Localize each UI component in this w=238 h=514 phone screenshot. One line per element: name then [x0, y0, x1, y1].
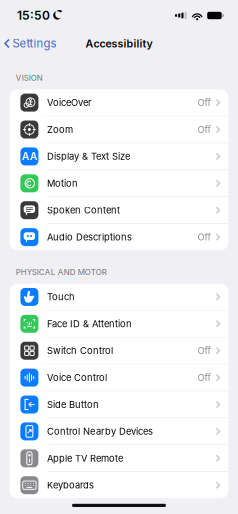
button[interactable]: VoiceOver [9, 89, 228, 116]
button[interactable]: Touch [9, 284, 228, 311]
button[interactable]: Face ID & Attention [9, 311, 228, 338]
staticText: Audio Descriptions [47, 231, 132, 243]
staticText: Spoken Content [47, 205, 120, 216]
button[interactable]: AA [9, 143, 228, 170]
button[interactable]: Spoken Content [9, 197, 228, 224]
staticText: Motion [47, 178, 78, 189]
staticText: Side Button [47, 399, 99, 410]
staticText: Apple TV Remote [47, 453, 123, 464]
staticText: VoiceOver [47, 97, 92, 108]
staticText: VISION [16, 73, 43, 83]
button[interactable]: Switch Control [9, 338, 228, 364]
staticText: Off [197, 231, 210, 243]
button[interactable]: Keyboards [9, 472, 228, 498]
button[interactable]: Motion [9, 170, 228, 197]
staticText: Zoom [47, 124, 73, 135]
staticText: Touch [47, 291, 75, 303]
staticText: Display & Text Size [47, 151, 130, 162]
button[interactable]: Audio Descriptions [9, 224, 228, 250]
staticText: Accessibility [85, 37, 152, 50]
staticText: Keyboards [47, 480, 94, 491]
staticText: Face ID & Attention [47, 318, 132, 329]
staticText: Settings [12, 37, 56, 50]
staticText: Off [197, 97, 210, 108]
button[interactable]: Control Nearby Devices [9, 418, 228, 445]
staticText: 15:50 [17, 8, 50, 23]
staticText: AA [22, 150, 37, 163]
button[interactable]: Apple TV Remote [9, 445, 228, 472]
staticText: PHYSICAL AND MOTOR [16, 267, 107, 277]
staticText: Switch Control [47, 345, 113, 356]
button[interactable]: Voice Control [9, 364, 228, 391]
button[interactable]: Zoom [9, 116, 228, 143]
staticText: Off [197, 124, 210, 135]
staticText: Voice Control [47, 372, 107, 383]
button[interactable]: Side Button [9, 391, 228, 418]
staticText: Off [197, 372, 210, 383]
staticText: Off [197, 345, 210, 356]
button[interactable]: Settings [0, 33, 56, 54]
staticText: Control Nearby Devices [47, 426, 153, 437]
